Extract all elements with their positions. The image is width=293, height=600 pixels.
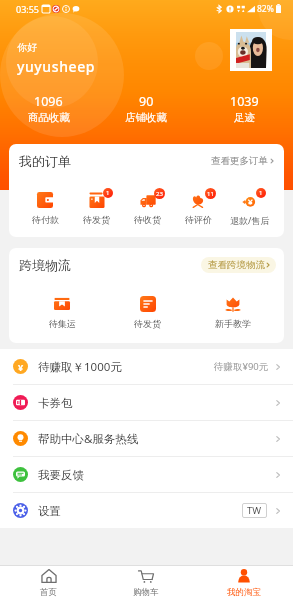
staticText: 新手教学 (215, 318, 251, 329)
staticText: 设置 (38, 504, 61, 518)
staticText: 82% (257, 3, 274, 15)
button[interactable]: 23 (122, 192, 173, 225)
staticText: 你好 (17, 41, 37, 54)
button[interactable]: 90 (97, 93, 195, 124)
staticText: 我的淘宝 (227, 587, 261, 598)
button[interactable]: 查看跨境物流 (201, 257, 276, 273)
staticText: 待集运 (49, 318, 76, 329)
button[interactable]: 卡券包 (13, 385, 282, 420)
staticText: 帮助中心&服务热线 (38, 431, 139, 447)
staticText: 待收货 (134, 214, 161, 225)
staticText: 店铺收藏 (125, 111, 167, 124)
staticText: ¥ (18, 361, 24, 373)
staticText: 1 (259, 189, 263, 197)
button[interactable]: 待付款 (19, 192, 71, 225)
staticText: 1096 (34, 93, 63, 110)
staticText: 我的订单 (19, 153, 71, 169)
button[interactable]: 待发货 (105, 296, 190, 329)
staticText: 卡券包 (38, 396, 73, 410)
button[interactable]: 1096 (0, 93, 97, 124)
staticText: 待发货 (134, 318, 161, 329)
staticText: 1 (106, 189, 110, 197)
staticText: 足迹 (234, 111, 255, 124)
staticText: 待付款 (32, 214, 59, 225)
button[interactable]: 待集运 (19, 296, 105, 329)
staticText: 待发货 (83, 214, 110, 225)
staticText: yuyusheep (17, 57, 96, 76)
staticText: TW (247, 504, 262, 517)
button[interactable]: 我要反馈 (13, 457, 282, 492)
button[interactable]: 查看更多订单 (211, 155, 275, 167)
staticText: 90 (139, 93, 154, 110)
button[interactable]: ¥ (13, 349, 282, 384)
button[interactable]: 新手教学 (190, 296, 275, 329)
staticText: 退款/售后 (230, 214, 270, 226)
staticText: 跨境物流 (19, 257, 71, 273)
staticText: 查看更多订单 (211, 155, 268, 167)
button[interactable]: 我的淘宝 (195, 568, 293, 598)
button[interactable]: 11 (173, 192, 224, 225)
button[interactable]: Profile photo (230, 29, 272, 71)
staticText: 03:55 (16, 3, 40, 15)
button[interactable]: 首页 (0, 568, 97, 598)
staticText: 我要反馈 (38, 468, 84, 482)
staticText: 11 (207, 190, 214, 198)
staticText: 23 (156, 190, 163, 198)
button[interactable]: 设置 (13, 493, 282, 528)
button[interactable]: 帮助中心&服务热线 (13, 421, 282, 456)
staticText: 待赚取¥90元 (214, 360, 269, 373)
button[interactable]: 购物车 (97, 568, 195, 598)
button[interactable]: 1 (71, 192, 122, 225)
staticText: 购物车 (133, 587, 159, 598)
staticText: 待赚取￥1000元 (38, 359, 122, 375)
staticText: 商品收藏 (28, 111, 70, 124)
staticText: 查看跨境物流 (208, 259, 265, 271)
staticText: 待评价 (185, 214, 212, 225)
button[interactable]: 1039 (195, 93, 293, 124)
staticText: 首页 (40, 587, 57, 598)
staticText: 1039 (230, 93, 259, 110)
button[interactable]: 1 (224, 192, 275, 226)
